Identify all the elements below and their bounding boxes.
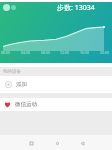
staticText: 微信运动	[15, 101, 37, 108]
button[interactable]: Home	[50, 136, 64, 150]
staticText: 添加	[16, 81, 27, 88]
staticText: 04:00	[21, 50, 30, 55]
button[interactable]: Profile	[3, 4, 10, 11]
button[interactable]: Recents	[24, 136, 38, 150]
staticText: 00:00	[1, 50, 10, 55]
staticText: 16:00	[80, 50, 89, 55]
staticText: 12:00	[60, 50, 69, 55]
staticText: 20:00	[100, 50, 109, 55]
staticText: 步数: 13034	[57, 3, 95, 13]
button[interactable]: 微信运动	[0, 98, 112, 111]
button[interactable]: 添加	[0, 76, 112, 93]
button[interactable]: Back	[75, 136, 89, 150]
staticText: 我的设备	[3, 69, 21, 75]
button[interactable]: Rank	[11, 5, 16, 10]
staticText: 08:00	[41, 50, 50, 55]
